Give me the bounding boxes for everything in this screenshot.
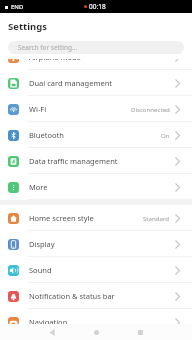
button[interactable]: Navigation bbox=[0, 309, 192, 335]
button[interactable]: Airplane mode bbox=[0, 59, 192, 70]
staticText: Standard bbox=[143, 214, 170, 222]
staticText: On bbox=[161, 131, 170, 139]
staticText: Search for setting... bbox=[18, 43, 78, 52]
staticText: Data traffic management bbox=[29, 156, 118, 166]
staticText: More bbox=[29, 182, 48, 192]
button[interactable]: Back bbox=[38, 324, 66, 340]
staticText: Wi-Fi bbox=[29, 104, 47, 114]
staticText: Sound bbox=[29, 265, 52, 275]
button[interactable]: Display bbox=[0, 231, 192, 257]
button[interactable]: Data traffic management bbox=[0, 148, 192, 174]
button[interactable]: More bbox=[0, 174, 192, 200]
staticText: Notification & status bar bbox=[29, 291, 115, 301]
button[interactable]: Bluetooth bbox=[0, 122, 192, 148]
staticText: Disconnected bbox=[131, 105, 170, 113]
staticText: Navigation bbox=[29, 317, 68, 327]
staticText: END bbox=[11, 3, 24, 11]
staticText: Settings bbox=[8, 20, 47, 33]
button[interactable]: Sound bbox=[0, 257, 192, 283]
button[interactable]: Dual card management bbox=[0, 70, 192, 96]
button[interactable]: Home screen style bbox=[0, 205, 192, 231]
staticText: Bluetooth bbox=[29, 130, 64, 140]
button[interactable]: Notification & status bar bbox=[0, 283, 192, 309]
button[interactable]: Wi-Fi bbox=[0, 96, 192, 122]
staticText: 00:18 bbox=[89, 2, 106, 11]
staticText: Dual card management bbox=[29, 78, 113, 88]
button[interactable]: Recents bbox=[126, 324, 154, 340]
staticText: Display bbox=[29, 239, 55, 249]
staticText: Airplane mode bbox=[29, 59, 81, 62]
button[interactable]: Home bbox=[82, 324, 110, 340]
staticText: Home screen style bbox=[29, 213, 94, 223]
button[interactable]: Search for setting... bbox=[8, 41, 184, 54]
